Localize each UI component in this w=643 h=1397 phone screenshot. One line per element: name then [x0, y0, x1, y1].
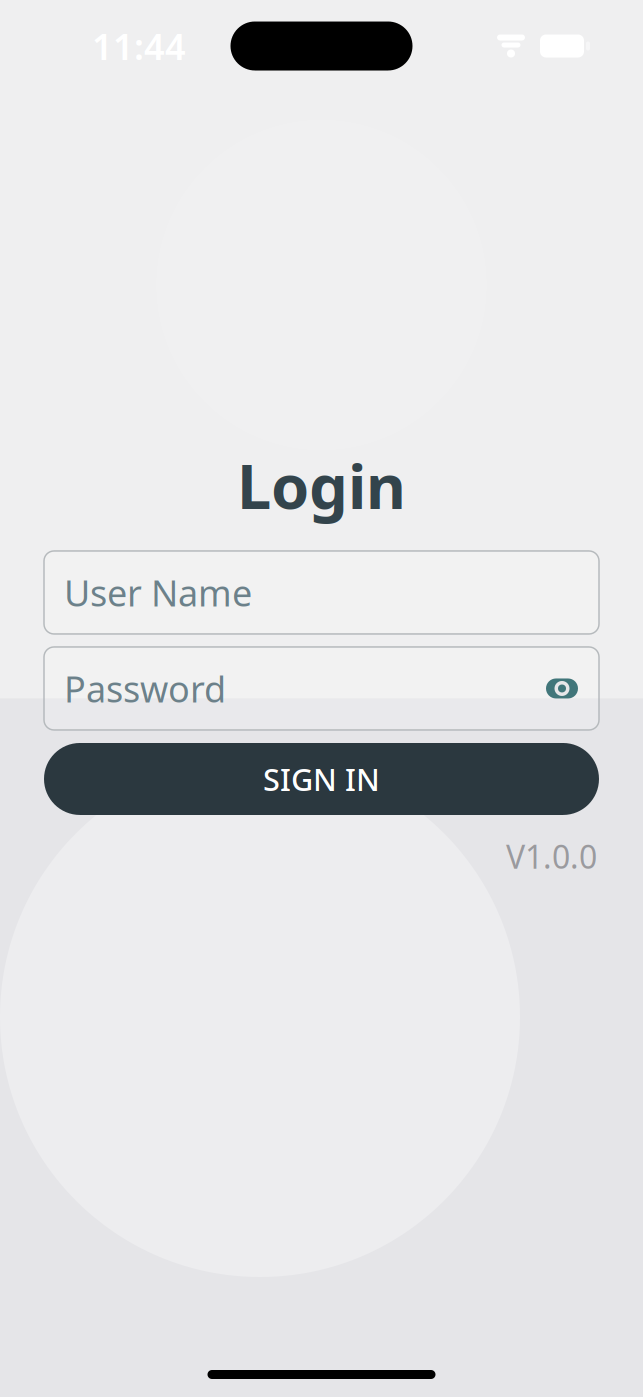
staticText: User Name [64, 569, 252, 616]
staticText: 11:44 [92, 22, 186, 70]
staticText: Password [64, 665, 226, 712]
button[interactable]: User Name [44, 551, 599, 634]
button[interactable]: SIGN IN [44, 743, 599, 815]
staticText: SIGN IN [263, 759, 380, 799]
button[interactable]: Password [44, 647, 599, 730]
staticText: V1.0.0 [506, 835, 597, 877]
staticText: Login [237, 444, 406, 526]
